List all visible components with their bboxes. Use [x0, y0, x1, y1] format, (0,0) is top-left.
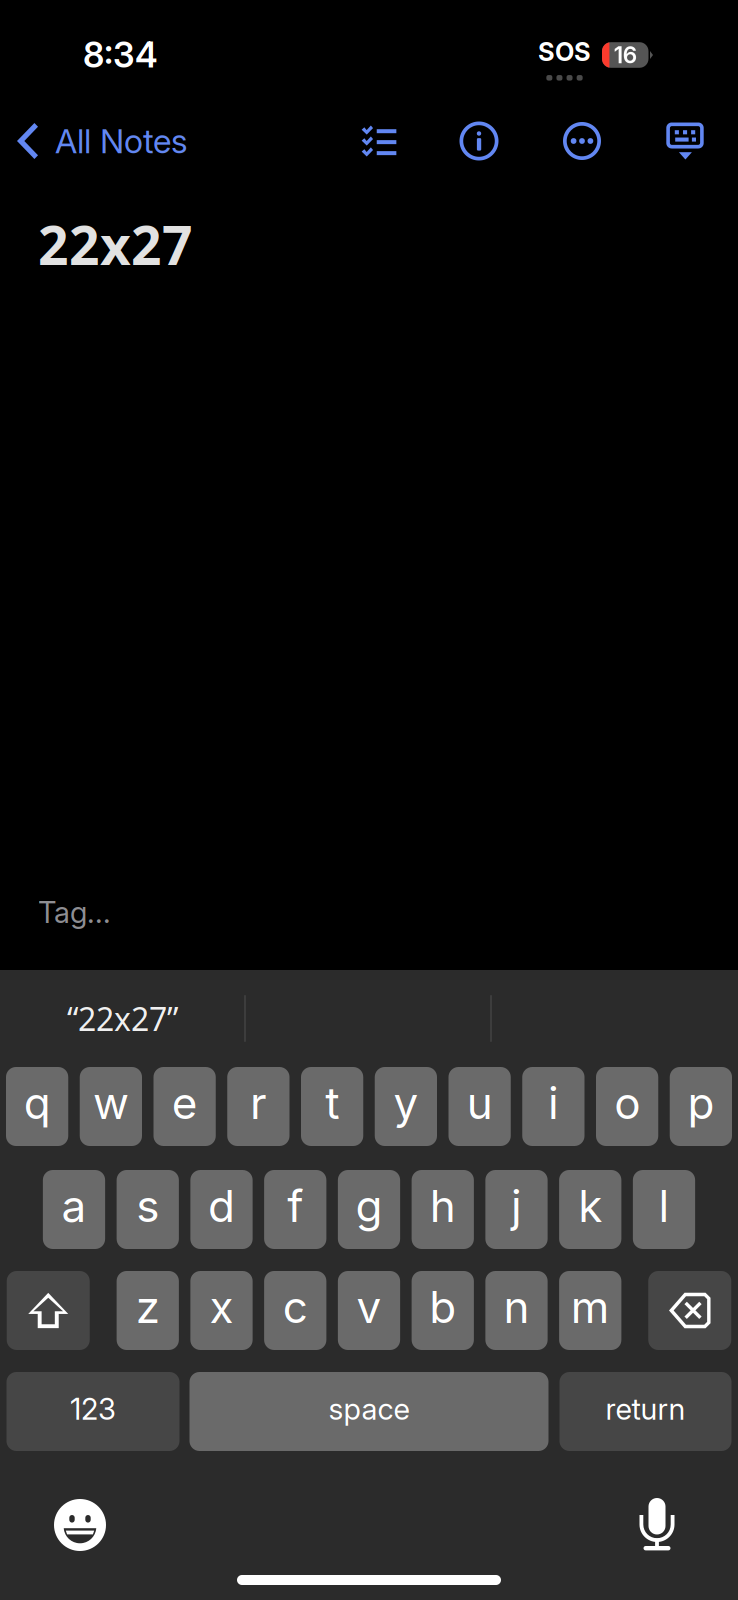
button[interactable]: 123 [6, 1372, 179, 1451]
staticText: d [208, 1179, 235, 1233]
staticText: “22x27” [67, 997, 178, 1040]
button[interactable]: Shift [7, 1271, 90, 1350]
staticText: r [250, 1076, 267, 1130]
button[interactable]: space [189, 1372, 548, 1451]
button[interactable]: p [670, 1067, 732, 1146]
staticText: return [605, 1391, 685, 1427]
staticText: p [687, 1076, 714, 1130]
button[interactable]: i [522, 1067, 584, 1146]
staticText: s [136, 1179, 159, 1233]
button[interactable]: x [190, 1271, 253, 1350]
button[interactable]: More Options [553, 110, 611, 172]
button[interactable]: v [338, 1271, 400, 1350]
staticText: 16 [614, 41, 637, 69]
staticText: f [287, 1179, 303, 1233]
button[interactable]: f [264, 1170, 326, 1249]
staticText: All Notes [55, 121, 188, 161]
staticText: y [393, 1076, 418, 1130]
button[interactable]: Dictation [635, 1498, 679, 1552]
button[interactable]: a [43, 1170, 105, 1249]
button[interactable]: u [448, 1067, 511, 1146]
button[interactable]: “22x27” [0, 970, 245, 1067]
button[interactable]: m [559, 1271, 621, 1350]
staticText: space [328, 1391, 409, 1427]
button[interactable]: All Notes [0, 110, 202, 172]
staticText: i [548, 1076, 559, 1130]
staticText: z [136, 1280, 160, 1334]
button[interactable]: g [338, 1170, 400, 1249]
staticText: l [658, 1179, 669, 1233]
staticText: m [571, 1280, 610, 1334]
staticText: j [511, 1179, 522, 1233]
button[interactable]: z [117, 1271, 179, 1350]
staticText: e [172, 1076, 198, 1130]
staticText: h [430, 1179, 456, 1233]
staticText: t [325, 1076, 339, 1130]
button[interactable]: y [375, 1067, 437, 1146]
button[interactable]: Emoji [54, 1499, 106, 1551]
staticText: x [209, 1280, 233, 1334]
button[interactable]: l [633, 1170, 695, 1249]
staticText: 8:34 [83, 34, 158, 76]
button[interactable]: q [6, 1067, 68, 1146]
button[interactable]: t [301, 1067, 363, 1146]
button[interactable]: c [264, 1271, 326, 1350]
staticText: a [61, 1179, 86, 1233]
staticText: n [503, 1280, 529, 1334]
staticText: 22x27 [38, 208, 193, 281]
button[interactable]: s [117, 1170, 179, 1249]
button[interactable]: e [153, 1067, 216, 1146]
staticText: v [356, 1280, 381, 1334]
button[interactable]: return [559, 1372, 731, 1451]
staticText: 123 [70, 1391, 116, 1427]
staticText: q [24, 1076, 51, 1130]
staticText: SOS [538, 36, 591, 67]
staticText: k [578, 1179, 602, 1233]
button[interactable]: k [559, 1170, 621, 1249]
button[interactable]: j [485, 1170, 548, 1249]
button[interactable]: w [80, 1067, 142, 1146]
staticText: w [93, 1076, 129, 1130]
staticText: b [429, 1280, 456, 1334]
button[interactable]: h [412, 1170, 474, 1249]
staticText: u [467, 1076, 493, 1130]
button[interactable]: b [412, 1271, 474, 1350]
button[interactable]: r [227, 1067, 289, 1146]
staticText: o [614, 1076, 640, 1130]
button[interactable]: Checklist [350, 110, 408, 172]
button[interactable]: d [190, 1170, 253, 1249]
staticText: Tag... [38, 894, 111, 930]
staticText: g [355, 1179, 382, 1233]
button[interactable]: Note Info [450, 110, 508, 172]
button[interactable]: Hide Keyboard [656, 110, 714, 172]
staticText: c [283, 1280, 308, 1334]
button[interactable]: o [596, 1067, 658, 1146]
button[interactable]: n [485, 1271, 548, 1350]
button[interactable]: Delete [648, 1271, 731, 1350]
